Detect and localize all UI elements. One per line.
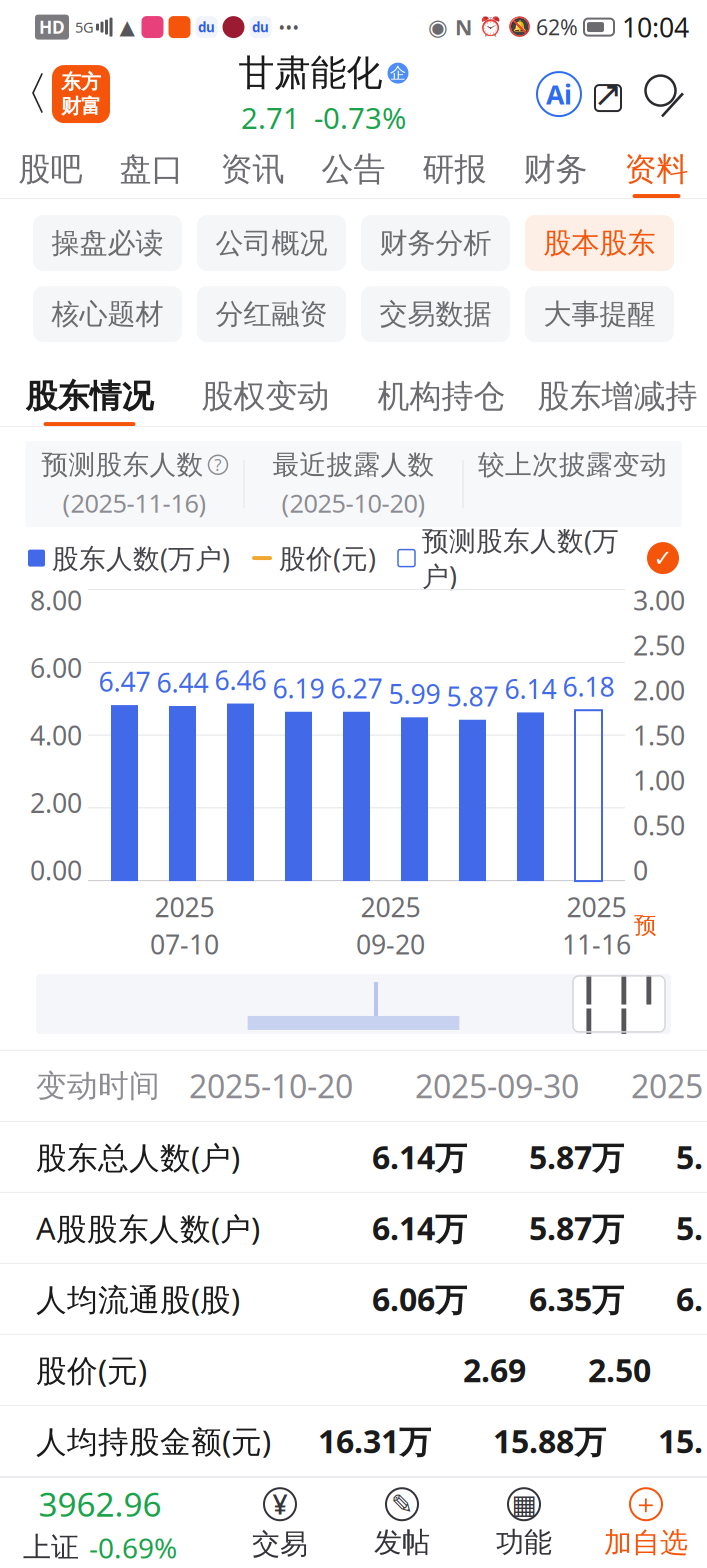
staticText: 5.87万 <box>529 1207 624 1249</box>
staticText: ❙❙❙ <box>611 971 661 1037</box>
staticText: 2.00 <box>30 785 82 820</box>
staticText: 1.50 <box>633 717 685 753</box>
staticText: 10:04 <box>622 9 689 45</box>
button[interactable]: 核心题材 <box>33 286 182 342</box>
button[interactable]: 股吧 <box>0 132 101 198</box>
staticText: 62% <box>536 13 578 41</box>
button[interactable]: 公司概况 <box>197 215 346 271</box>
staticText: 人均持股金额(元) <box>36 1421 271 1461</box>
staticText: Ai <box>546 76 572 112</box>
staticText: A股股东人数(户) <box>36 1207 260 1248</box>
button[interactable]: 研报 <box>404 132 505 198</box>
staticText: 5G <box>75 17 94 37</box>
button[interactable]: 确认 <box>647 542 679 574</box>
button[interactable]: ¥ <box>219 1478 341 1568</box>
button[interactable]: 股权变动 <box>177 360 353 426</box>
staticText: 股东人数(万户) <box>52 540 230 576</box>
staticText: 0.50 <box>633 807 685 843</box>
staticText: 2.50 <box>633 627 685 663</box>
staticText: 股价(元) <box>279 540 376 576</box>
staticText: 股吧 <box>18 150 82 189</box>
staticText: 资讯 <box>220 150 284 189</box>
staticText: 3.00 <box>633 582 685 618</box>
staticText: 上证 <box>23 1530 79 1565</box>
button[interactable]: 东方财富 <box>52 65 110 123</box>
staticText: 交易 <box>252 1527 308 1561</box>
button[interactable]: ＋ <box>585 1478 707 1568</box>
staticText: ▦ <box>511 1489 536 1519</box>
staticText: 股东增减持 <box>537 377 697 416</box>
button[interactable]: 资讯 <box>202 132 303 198</box>
staticText: ▲ <box>119 16 134 38</box>
staticText: 功能 <box>496 1525 552 1560</box>
button[interactable]: ✎ <box>341 1478 463 1568</box>
staticText: 5.87 <box>446 678 498 714</box>
button[interactable]: 分享 <box>581 64 635 124</box>
staticText: 发帖 <box>374 1525 430 1560</box>
button[interactable]: 返回 <box>0 59 52 129</box>
button[interactable]: 分红融资 <box>197 286 346 342</box>
staticText: 东方 <box>61 69 101 94</box>
staticText: ❙❙ <box>576 971 601 1037</box>
staticText: ／ <box>660 87 687 120</box>
button[interactable]: 操盘必读 <box>33 215 182 271</box>
button[interactable]: 公告 <box>303 132 404 198</box>
button[interactable]: 机构持仓 <box>353 360 529 426</box>
staticText: 5. <box>676 1207 703 1249</box>
staticText: 研报 <box>422 150 486 189</box>
staticText: 机构持仓 <box>377 377 505 416</box>
staticText: 操盘必读 <box>51 226 163 260</box>
staticText: (2025-11-16) <box>62 486 206 520</box>
staticText: 2025 <box>566 889 626 924</box>
button[interactable]: 财务分析 <box>361 215 510 271</box>
staticText: 6.14万 <box>372 1207 467 1249</box>
staticText: 较上次披露变动 <box>478 448 667 481</box>
button[interactable]: 股东情况 <box>1 360 177 426</box>
button[interactable]: 盘口 <box>101 132 202 198</box>
button[interactable]: 财务 <box>505 132 606 198</box>
staticText: 交易数据 <box>379 297 491 331</box>
staticText: 6.00 <box>30 650 82 685</box>
staticText: 变动时间 <box>36 1067 160 1105</box>
button[interactable]: 3962.96 <box>0 1478 200 1568</box>
staticText: 2.69 <box>463 1349 526 1391</box>
button[interactable]: 大事提醒 <box>525 286 674 342</box>
staticText: 加自选 <box>604 1526 688 1560</box>
button[interactable]: ▦ <box>463 1478 585 1568</box>
staticText: ◉ <box>428 14 448 40</box>
staticText: -0.73% <box>314 98 406 137</box>
button[interactable]: AI 助手 <box>537 72 581 116</box>
staticText: 3962.96 <box>38 1482 161 1526</box>
staticText: 0 <box>633 852 648 888</box>
staticText: 财务分析 <box>379 226 491 260</box>
staticText: 6.19 <box>272 670 324 706</box>
staticText: 1.00 <box>633 762 685 798</box>
staticText: 15.88万 <box>493 1420 606 1462</box>
button[interactable]: 股本股东 <box>525 215 674 271</box>
staticText: 人均流通股(股) <box>36 1279 240 1319</box>
button[interactable]: 交易数据 <box>361 286 510 342</box>
staticText: ¥ <box>272 1486 287 1522</box>
staticText: 6.14 <box>504 671 556 706</box>
staticText: 预 <box>634 912 657 939</box>
staticText: 财务 <box>523 150 587 189</box>
staticText: 〈 <box>3 66 48 122</box>
staticText: 公司概况 <box>215 226 327 260</box>
staticText: 盘口 <box>119 150 183 189</box>
staticText: 股本股东 <box>543 226 655 260</box>
staticText: 公告 <box>321 150 385 189</box>
staticText: 2.71 <box>241 98 300 137</box>
button[interactable]: 资料 <box>606 132 707 198</box>
staticText: 07-10 <box>150 926 219 962</box>
staticText: 6. <box>676 1278 703 1320</box>
button[interactable]: 股东增减持 <box>529 360 705 426</box>
staticText: ＋ <box>632 1488 659 1521</box>
staticText: 5.87万 <box>529 1136 624 1178</box>
staticText: 预测股东人数 <box>41 448 203 481</box>
staticText: 15. <box>658 1420 703 1462</box>
button[interactable]: 搜索 <box>635 65 693 123</box>
staticText: 6.06万 <box>372 1278 467 1320</box>
staticText: 5. <box>676 1136 703 1178</box>
staticText: 2025 <box>631 1065 703 1107</box>
staticText: 股东情况 <box>25 377 153 416</box>
